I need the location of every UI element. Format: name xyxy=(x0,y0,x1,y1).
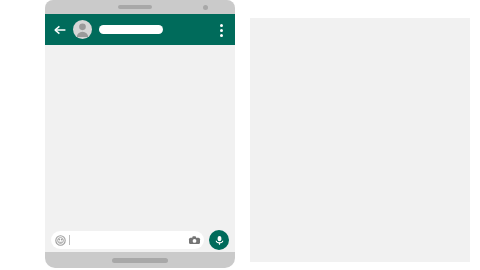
button[interactable]: Record voice message xyxy=(209,230,229,250)
button[interactable]: Contact name xyxy=(99,25,163,34)
button[interactable]: Back xyxy=(51,21,69,39)
button[interactable]: Camera xyxy=(189,235,200,246)
button[interactable]: More options xyxy=(212,17,230,43)
button[interactable]: Contact avatar xyxy=(73,20,92,39)
button[interactable]: Camera xyxy=(51,231,204,249)
